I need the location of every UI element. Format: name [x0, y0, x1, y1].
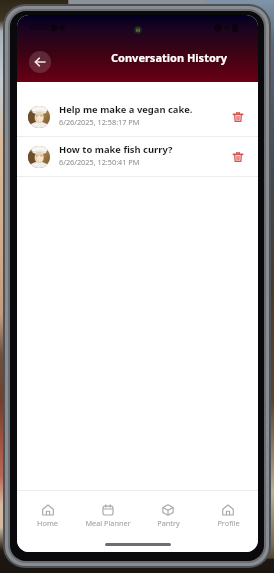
- staticText: Help me make a vegan cake.: [59, 103, 193, 116]
- staticText: 6/26/2025, 12:50:41 PM: [59, 157, 140, 167]
- button[interactable]: Pantry: [138, 504, 198, 538]
- staticText: Meal Planner: [85, 518, 131, 528]
- staticText: Profile: [217, 518, 240, 528]
- staticText: Home: [37, 518, 58, 528]
- button[interactable]: Delete conversation: [228, 147, 248, 167]
- staticText: Conversation History: [73, 50, 258, 65]
- staticText: Pantry: [157, 518, 180, 528]
- button[interactable]: Back: [29, 51, 51, 73]
- staticText: How to make fish curry?: [59, 143, 173, 156]
- button[interactable]: How to make fish curry?: [17, 137, 258, 177]
- button[interactable]: Meal Planner: [78, 504, 138, 538]
- staticText: 6/26/2025, 12:58:17 PM: [59, 117, 140, 127]
- button[interactable]: Profile: [198, 504, 258, 538]
- button[interactable]: Delete conversation: [228, 107, 248, 127]
- button[interactable]: Home: [17, 504, 78, 538]
- button[interactable]: Help me make a vegan cake.: [17, 97, 258, 137]
